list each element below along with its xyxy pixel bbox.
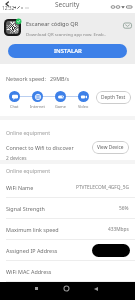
button[interactable]: Maximum link speed [0,219,135,240]
staticText: Video [78,104,89,109]
button[interactable]: Back [89,282,102,295]
staticText: Maximum link speed [6,226,59,233]
button[interactable]: INSTALAR [8,44,127,58]
staticText: Chat [10,104,19,109]
button[interactable]: Home [60,282,73,295]
staticText: Online equipment [6,167,51,174]
button[interactable]: View Device [92,141,129,154]
button[interactable]: Signal Strength [0,198,135,219]
staticText: PTVTELECOM_4GFQ_5G [76,184,129,191]
staticText: INSTALAR [54,47,82,55]
staticText: Internet [30,104,45,109]
staticText: Security [55,0,80,9]
button[interactable]: Back [2,0,11,8]
button[interactable]: Chat [2,91,26,109]
button[interactable]: Game [49,91,72,109]
staticText: WiFi MAC Address [6,268,52,275]
staticText: Depth Test [101,94,126,101]
other: Message [123,21,132,30]
staticText: View Device [97,144,124,151]
button[interactable]: WiFi MAC Address [0,261,135,282]
staticText: Signal Strength [6,205,45,212]
button[interactable]: Depth Test [96,91,131,104]
staticText: Assigned IP Address [6,247,58,254]
staticText: 29MB/s [50,75,70,82]
staticText: Escanear código QR [26,20,79,28]
button[interactable]: WiFi Name [0,177,135,198]
staticText: Download QR scanning app now. Enab.. [26,31,106,37]
staticText: 2 devices [6,155,27,160]
staticText: Game [55,104,66,109]
staticText: WiFi Name [6,184,34,191]
button[interactable]: Video [72,91,95,109]
staticText: 56% [119,205,129,212]
staticText: Connect to Wifi to discover [6,144,74,151]
staticText: Online equipment [6,129,51,136]
button[interactable]: Recents [30,282,43,295]
staticText: 12:32 [2,5,15,12]
staticText: 433Mbps [108,226,129,233]
button[interactable]: Assigned IP Address [0,240,135,261]
button[interactable]: Internet [26,91,49,109]
staticText: Network speed: [6,75,46,82]
